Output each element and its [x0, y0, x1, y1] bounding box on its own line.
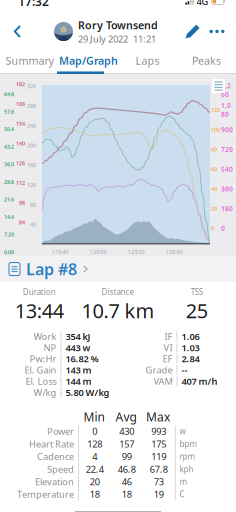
staticText: 993	[151, 425, 166, 437]
staticText: kph	[180, 464, 194, 474]
button[interactable]: Map/Graph	[59, 50, 118, 71]
staticText: C	[180, 489, 185, 499]
staticText: 13:44	[15, 297, 64, 324]
button[interactable]: Back	[6, 16, 30, 46]
staticText: 1:23:20	[127, 248, 144, 255]
staticText: 1.03	[181, 341, 199, 354]
staticText: 407 m/h	[181, 375, 217, 387]
staticText: Summary	[5, 54, 53, 68]
staticText: 280	[27, 102, 36, 109]
staticText: 175	[151, 438, 166, 450]
button[interactable]: Summary	[0, 50, 59, 71]
staticText: w	[180, 426, 186, 436]
staticText: 119	[151, 450, 166, 463]
staticText: 143 m	[65, 364, 91, 376]
button[interactable]: More options	[204, 19, 230, 43]
staticText: Distance	[101, 287, 134, 297]
staticText: 98	[19, 199, 25, 206]
staticText: 320	[27, 82, 36, 90]
staticText: 2.84	[181, 352, 199, 365]
staticText: 73	[154, 475, 164, 488]
staticText: 84	[19, 219, 25, 226]
staticText: 720	[221, 145, 233, 154]
staticText: 900	[221, 125, 233, 134]
staticText: 80	[211, 146, 217, 153]
staticText: TSS	[191, 287, 203, 297]
staticText: Work	[34, 330, 57, 342]
staticText: 360	[221, 184, 233, 193]
staticText: 40	[30, 221, 36, 228]
staticText: NP	[44, 341, 57, 354]
staticText: bpm	[180, 438, 197, 449]
staticText: 140	[16, 140, 25, 147]
staticText: 46.8	[118, 463, 136, 475]
staticText: El. Gain	[25, 364, 57, 376]
staticText: m	[180, 476, 187, 487]
staticText: 80	[30, 201, 36, 208]
staticText: 540	[221, 165, 233, 173]
staticText: Rory Townsend	[78, 18, 158, 32]
staticText: 112	[16, 179, 25, 186]
staticText: 5.80 W/kg	[65, 386, 109, 398]
staticText: 7.20	[4, 231, 14, 238]
staticText: 60	[211, 165, 217, 173]
staticText: 168	[16, 100, 25, 107]
staticText: 1,080	[221, 101, 231, 119]
staticText: Map/Graph	[59, 54, 118, 68]
staticText: Avg	[115, 409, 136, 425]
staticText: Grade	[146, 364, 173, 376]
button[interactable]: Chart legend	[212, 79, 225, 93]
staticText: 11:21	[133, 33, 156, 45]
staticText: 1,260	[221, 81, 231, 99]
staticText: VAM	[154, 375, 173, 387]
staticText: 0	[92, 425, 97, 437]
staticText: 144 m	[65, 375, 91, 387]
staticText: 18	[122, 488, 132, 500]
staticText: Laps	[135, 54, 159, 68]
staticText: Pw:Hr	[30, 352, 57, 365]
staticText: 354 kJ	[65, 330, 90, 342]
staticText: 25	[186, 297, 208, 324]
staticText: 443 w	[65, 341, 90, 354]
staticText: 20	[211, 205, 217, 212]
button[interactable]: Lap #8	[0, 257, 236, 282]
staticText: Peaks	[192, 54, 221, 68]
staticText: 4	[92, 450, 97, 463]
staticText: 99	[122, 450, 132, 463]
staticText: 1:26:40	[165, 248, 182, 255]
staticText: El. Loss	[26, 375, 57, 387]
staticText: Min	[83, 409, 104, 425]
staticText: EF	[163, 352, 173, 365]
staticText: 120	[211, 106, 220, 113]
button[interactable]: Edit	[182, 19, 204, 43]
staticText: --	[181, 364, 187, 376]
staticText: 40	[211, 185, 217, 192]
staticText: 18	[90, 488, 100, 500]
staticText: 36.0	[4, 161, 14, 168]
staticText: 10.7 km	[81, 297, 154, 324]
staticText: Cadence	[37, 450, 74, 463]
staticText: 160	[27, 161, 36, 169]
staticText: IF	[165, 330, 173, 342]
staticText: Elevation	[35, 475, 74, 488]
staticText: 4G	[196, 0, 208, 8]
staticText: Temperature	[17, 488, 74, 500]
staticText: 46	[122, 475, 132, 488]
staticText: rpm	[180, 451, 195, 462]
staticText: Heart Rate	[29, 438, 74, 450]
button[interactable]: Laps	[118, 50, 177, 71]
staticText: 140	[211, 86, 220, 94]
staticText: 29 July 2022	[78, 33, 128, 45]
staticText: Power	[47, 425, 74, 437]
staticText: 28.8	[4, 178, 14, 185]
staticText: 126	[16, 159, 25, 167]
staticText: 1.06	[181, 330, 199, 342]
staticText: 0	[221, 224, 225, 233]
button[interactable]: Peaks	[177, 50, 236, 71]
staticText: 43.2	[4, 143, 14, 150]
staticText: 0	[211, 225, 214, 232]
staticText: 64.8	[4, 90, 14, 98]
staticText: W/kg	[34, 386, 57, 398]
staticText: 157	[119, 438, 134, 450]
staticText: 20	[90, 475, 100, 488]
